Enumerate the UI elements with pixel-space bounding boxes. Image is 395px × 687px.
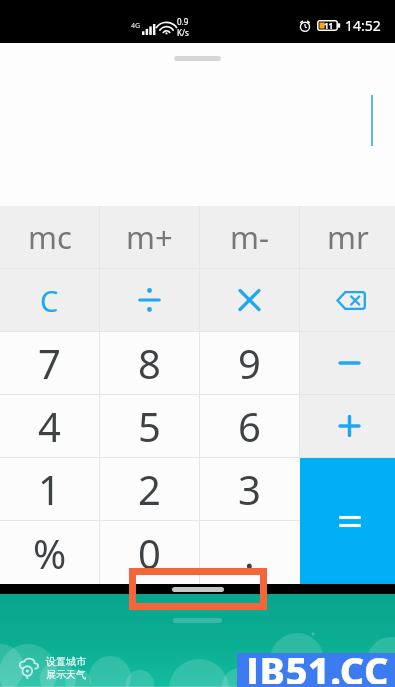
staticText: 7	[38, 336, 61, 390]
button[interactable]: Equals	[300, 458, 395, 584]
button[interactable]: Multiply	[200, 269, 299, 331]
button[interactable]: 0	[100, 521, 199, 584]
staticText: 4	[38, 399, 61, 453]
button[interactable]: 8	[100, 332, 199, 394]
staticText: 展示天气	[46, 668, 86, 681]
button[interactable]: C	[0, 269, 99, 331]
staticText: mc	[28, 216, 72, 258]
staticText: 3	[238, 462, 261, 516]
staticText: 4G	[131, 21, 141, 31]
staticText: K/s	[177, 27, 189, 38]
staticText: C	[40, 281, 59, 320]
staticText: 0	[138, 526, 161, 580]
staticText: 1	[38, 462, 61, 516]
button[interactable]: %	[0, 521, 99, 584]
staticText: JB51.CC	[246, 644, 389, 684]
button[interactable]: 3	[200, 458, 299, 520]
button[interactable]: mc	[0, 206, 99, 268]
button[interactable]: Plus	[300, 395, 395, 457]
staticText: 11	[324, 20, 334, 31]
staticText: .	[244, 526, 255, 580]
button[interactable]: Expand history	[174, 56, 221, 61]
staticText: 14:52	[345, 16, 381, 35]
staticText: 6	[238, 399, 261, 453]
button[interactable]: m-	[200, 206, 299, 268]
button[interactable]: 2	[100, 458, 199, 520]
button[interactable]: 5	[100, 395, 199, 457]
staticText: 2	[138, 462, 161, 516]
staticText: 设置城市	[46, 655, 86, 668]
staticText: 5	[138, 399, 161, 453]
staticText: m+	[126, 216, 173, 258]
button[interactable]: Minus	[300, 332, 395, 394]
staticText: m-	[230, 216, 269, 258]
staticText: 9	[238, 336, 261, 390]
button[interactable]: 7	[0, 332, 99, 394]
button[interactable]: m+	[100, 206, 199, 268]
button[interactable]: 6	[200, 395, 299, 457]
button[interactable]: .	[200, 521, 299, 584]
button[interactable]: 1	[0, 458, 99, 520]
button[interactable]: Divide	[100, 269, 199, 331]
button[interactable]: 设置城市	[17, 655, 86, 681]
button[interactable]: Backspace	[300, 269, 395, 331]
button[interactable]: 9	[200, 332, 299, 394]
staticText: mr	[327, 216, 369, 258]
staticText: 0.9	[177, 16, 189, 27]
staticText: %	[33, 526, 67, 580]
button[interactable]: mr	[300, 206, 395, 268]
button[interactable]: 4	[0, 395, 99, 457]
staticText: 8	[138, 336, 161, 390]
button[interactable]: Home	[172, 587, 224, 592]
